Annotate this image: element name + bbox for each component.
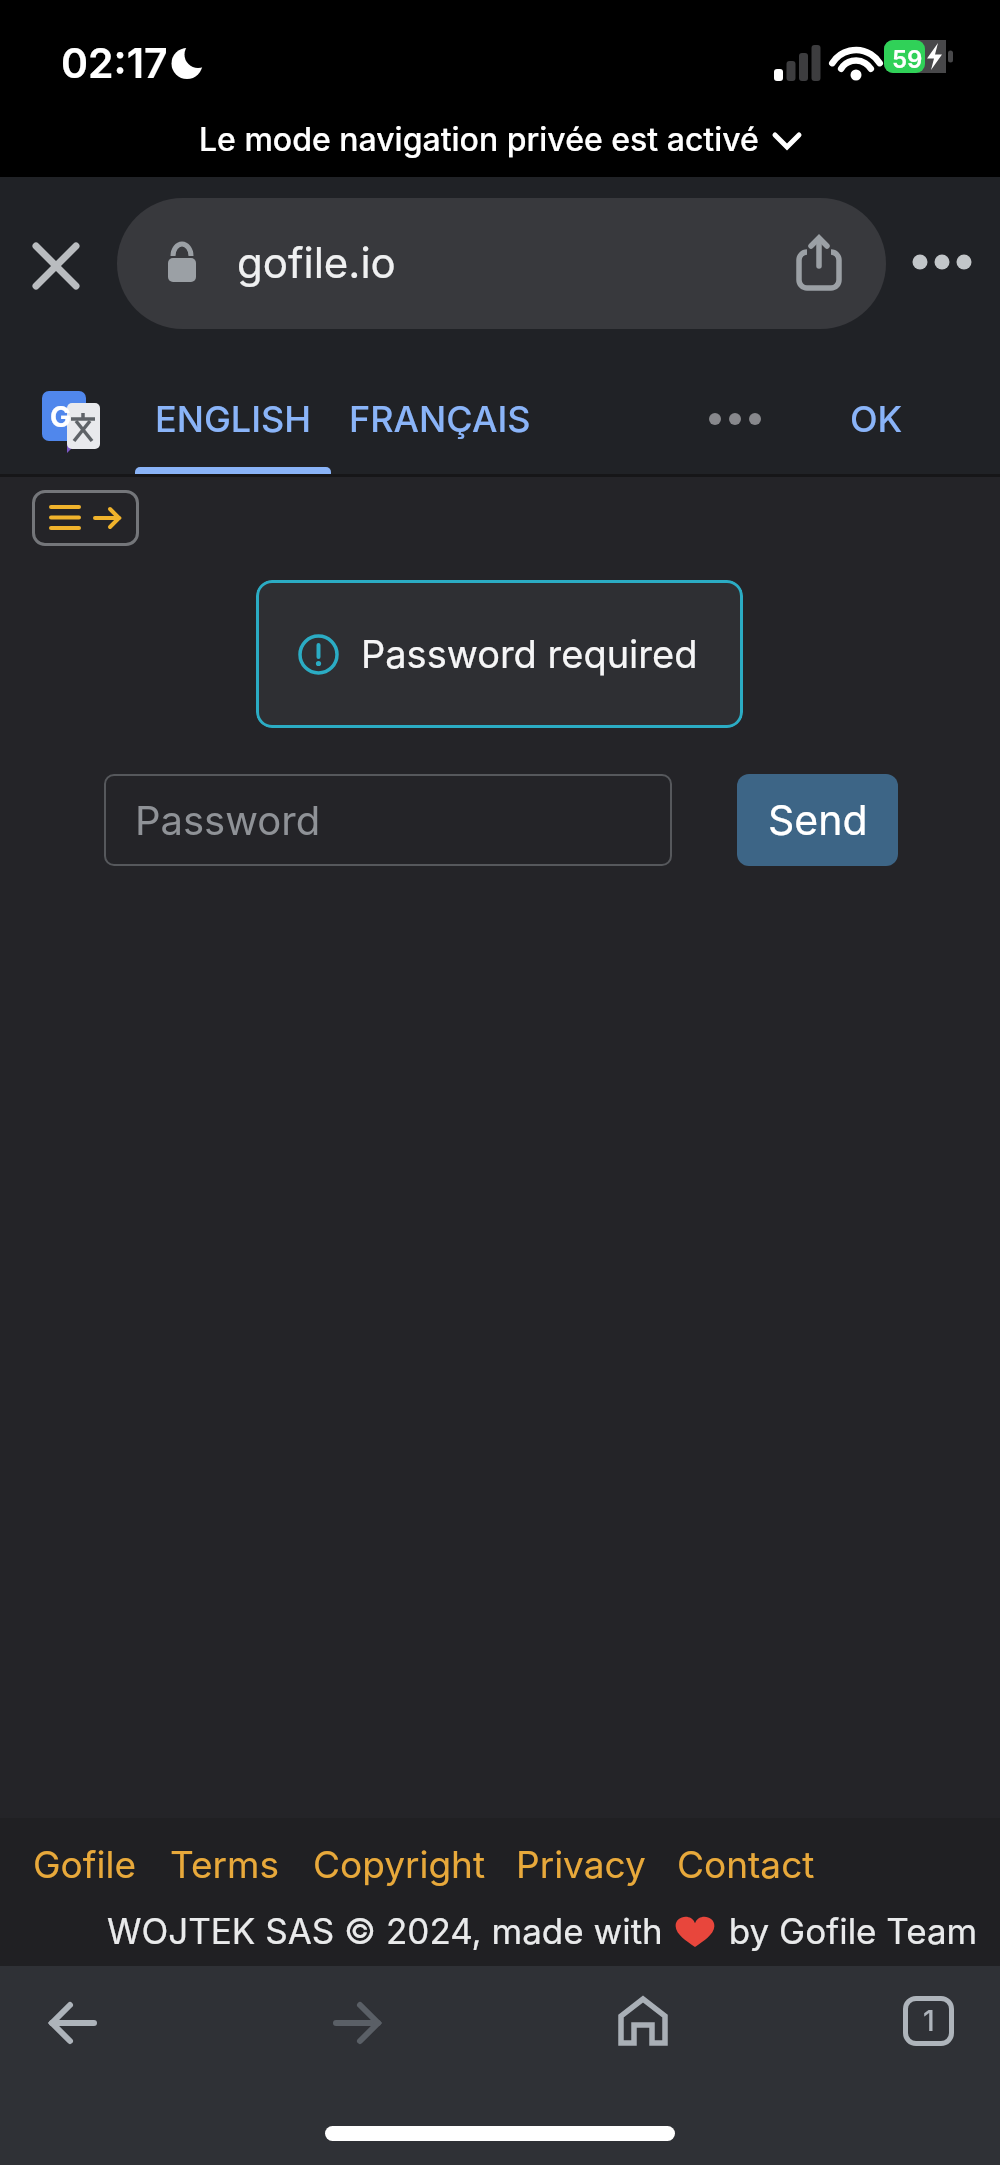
- staticText: FRANÇAIS: [349, 397, 531, 441]
- staticText: G: [50, 400, 72, 434]
- staticText: Gofile: [33, 1842, 136, 1887]
- button[interactable]: Contact: [677, 1842, 815, 1887]
- staticText: by Gofile Team: [719, 1910, 978, 1952]
- button[interactable]: [32, 490, 139, 546]
- staticText: gofile.io: [237, 237, 396, 288]
- button[interactable]: gofile.io: [117, 198, 886, 329]
- button[interactable]: Password: [104, 774, 672, 866]
- button[interactable]: [312, 1978, 402, 2068]
- staticText: Le mode navigation privée est activé: [199, 120, 759, 159]
- staticText: OK: [850, 397, 903, 441]
- staticText: Password required: [361, 631, 698, 677]
- button[interactable]: Privacy: [516, 1842, 646, 1887]
- button[interactable]: ENGLISH: [135, 371, 331, 467]
- button[interactable]: OK: [820, 371, 932, 467]
- staticText: Copyright: [313, 1842, 486, 1887]
- staticText: 59: [892, 45, 923, 74]
- button[interactable]: Send: [737, 774, 898, 866]
- button[interactable]: Gofile: [33, 1842, 136, 1887]
- button[interactable]: 1: [883, 1976, 973, 2066]
- staticText: ENGLISH: [155, 397, 312, 441]
- button[interactable]: [690, 386, 780, 452]
- staticText: Privacy: [516, 1842, 646, 1887]
- staticText: 02:17: [61, 38, 168, 88]
- button[interactable]: [598, 1976, 688, 2066]
- button[interactable]: [900, 232, 990, 292]
- button[interactable]: Terms: [170, 1842, 280, 1887]
- staticText: Contact: [677, 1842, 815, 1887]
- staticText: WOJTEK SAS © 2024, made with: [107, 1910, 673, 1952]
- staticText: Terms: [170, 1842, 280, 1887]
- button[interactable]: Copyright: [313, 1842, 486, 1887]
- button[interactable]: [20, 230, 92, 302]
- staticText: Send: [768, 795, 868, 845]
- staticText: Password: [135, 796, 321, 844]
- staticText: 1: [923, 2004, 935, 2038]
- button[interactable]: [781, 223, 857, 303]
- button[interactable]: Le mode navigation privée est activé: [199, 120, 801, 159]
- button[interactable]: FRANÇAIS: [340, 371, 540, 467]
- button[interactable]: [28, 1978, 118, 2068]
